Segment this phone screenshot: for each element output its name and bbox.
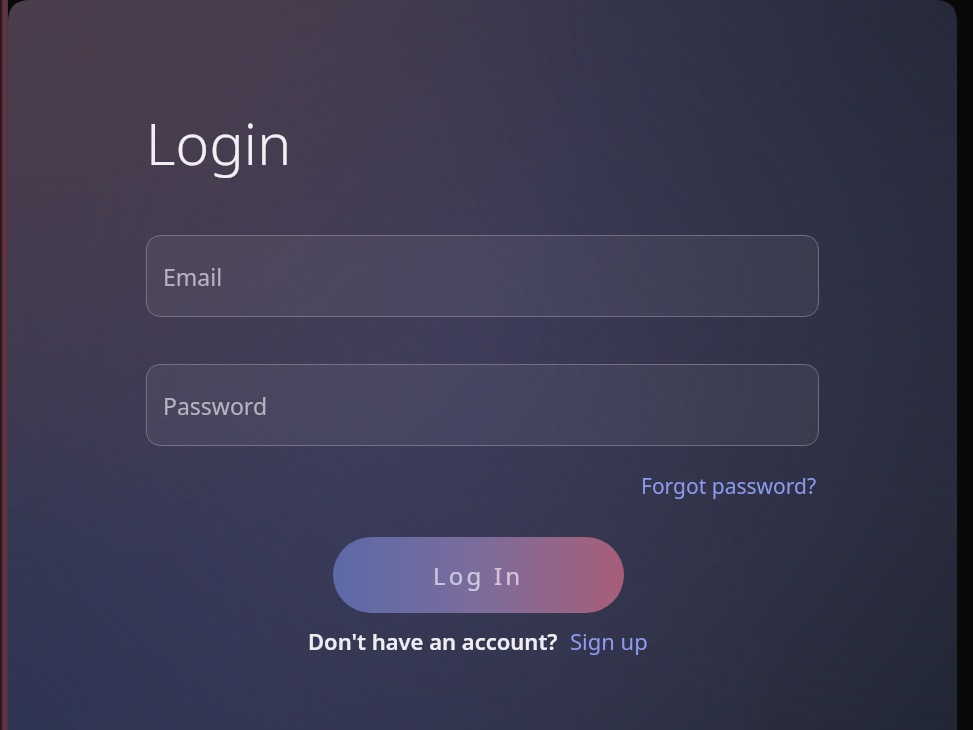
button[interactable]: Email	[146, 235, 819, 317]
button[interactable]: Password	[146, 364, 819, 446]
staticText: Forgot password?	[641, 472, 817, 501]
staticText: Email	[163, 261, 223, 292]
button[interactable]: Sign up	[568, 623, 650, 659]
staticText: Don't have an account?	[308, 626, 558, 656]
button[interactable]: Log In	[333, 537, 624, 613]
staticText: Log In	[433, 559, 524, 592]
staticText: Login	[146, 104, 292, 182]
staticText: Sign up	[570, 626, 648, 656]
staticText: Password	[163, 390, 268, 421]
button[interactable]: Forgot password?	[639, 468, 819, 505]
